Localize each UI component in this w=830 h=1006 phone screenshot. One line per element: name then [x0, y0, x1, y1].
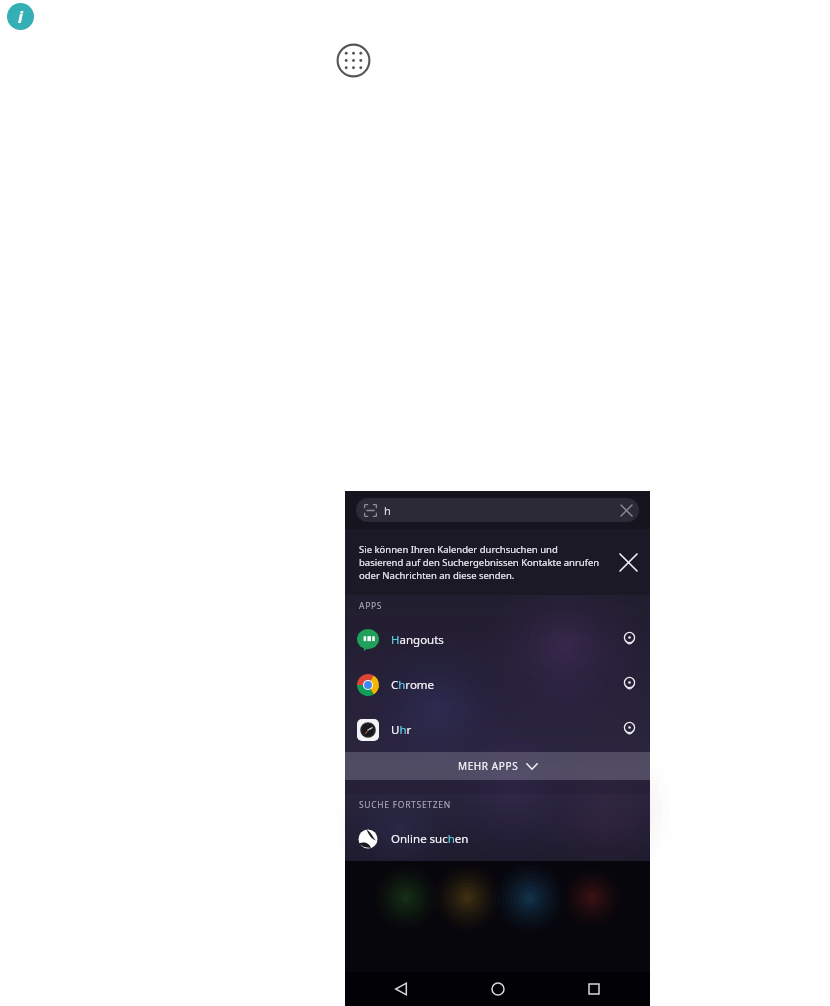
button[interactable]: Back — [361, 972, 441, 1006]
staticText: Sie können Ihren Kalender durchsuchen un… — [359, 543, 600, 582]
staticText: Uhr — [391, 722, 608, 738]
button[interactable]: Show location — [608, 617, 650, 662]
button[interactable]: Uhr — [345, 707, 650, 752]
button[interactable]: Chrome — [345, 662, 650, 707]
button[interactable]: Hangouts — [345, 617, 650, 662]
staticText: Chrome — [391, 677, 608, 693]
staticText: Hangouts — [391, 632, 608, 648]
button[interactable]: Apps — [336, 43, 371, 78]
button[interactable]: Clear search — [613, 498, 639, 522]
staticText: MEHR APPS — [458, 759, 519, 773]
button[interactable]: Dismiss hint — [606, 529, 650, 595]
button[interactable]: Show location — [608, 662, 650, 707]
staticText: Online suchen — [391, 831, 608, 847]
staticText: h — [384, 503, 391, 518]
staticText: APPS — [359, 600, 383, 612]
button[interactable]: Show location — [608, 707, 650, 752]
button[interactable]: h — [356, 498, 639, 522]
button[interactable]: MEHR APPS — [345, 752, 650, 780]
button[interactable]: Online suchen — [345, 816, 650, 861]
staticText: i — [18, 6, 23, 28]
button[interactable]: Recent apps — [554, 972, 634, 1006]
staticText: SUCHE FORTSETZEN — [359, 799, 451, 811]
button[interactable]: Home — [458, 972, 538, 1006]
button[interactable]: Information — [7, 3, 34, 30]
